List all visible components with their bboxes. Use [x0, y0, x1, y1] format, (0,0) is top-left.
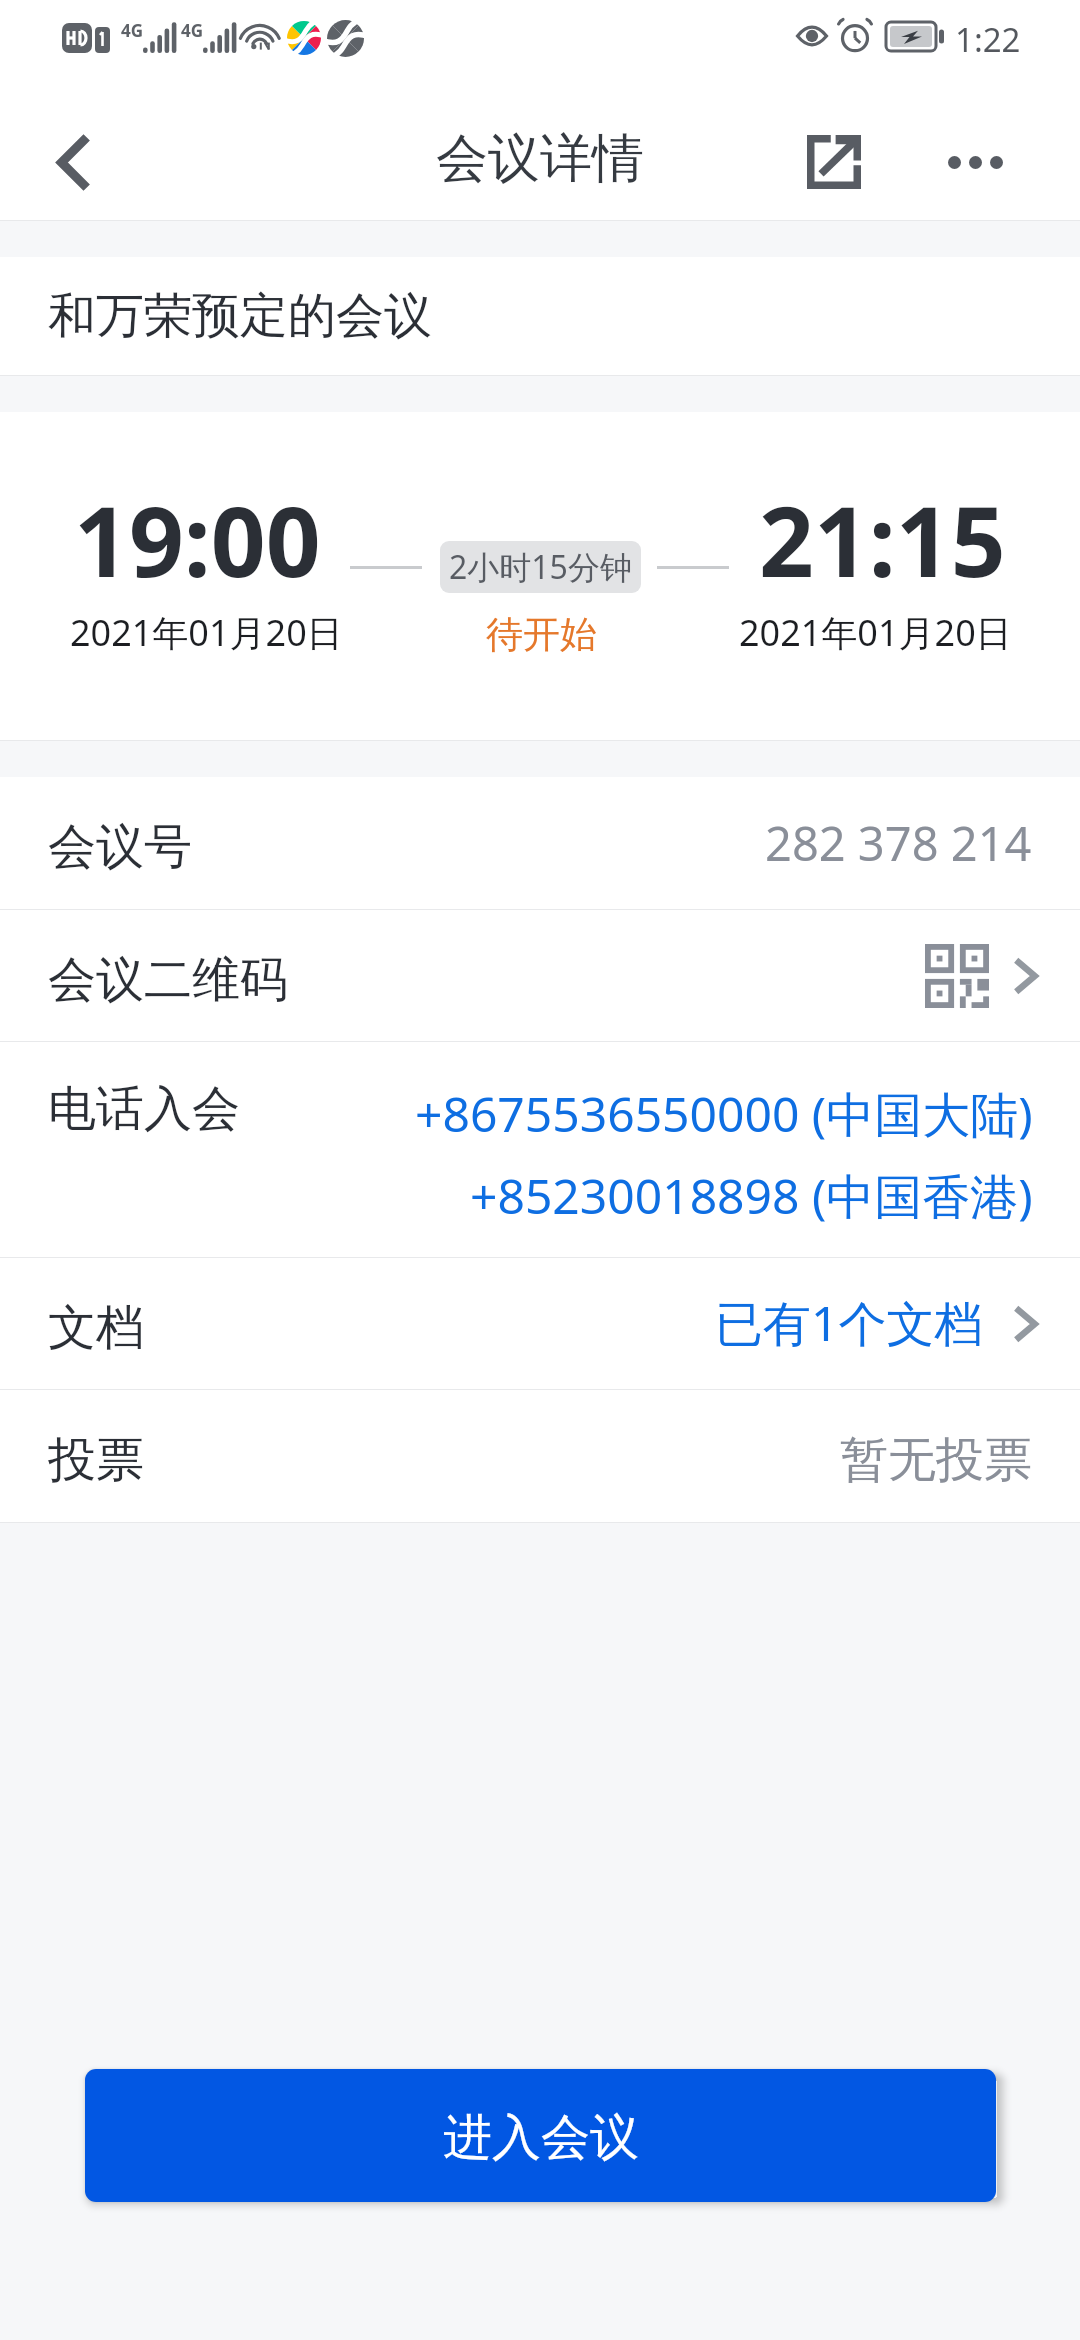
button[interactable]: 投票: [0, 1390, 1080, 1522]
staticText: 已有1个文档: [715, 1290, 983, 1356]
button[interactable]: Share: [774, 92, 894, 220]
staticText: 2小时15分钟: [449, 545, 632, 589]
staticText: 文档: [48, 1298, 144, 1358]
staticText: 282 378 214: [765, 811, 1032, 875]
button[interactable]: Back: [12, 92, 132, 220]
staticText: 19:00: [74, 474, 321, 605]
staticText: 暂无投票: [840, 1430, 1032, 1490]
button[interactable]: 文档: [0, 1258, 1080, 1389]
button[interactable]: 和万荣预定的会议: [0, 257, 1080, 375]
staticText: 21:15: [759, 474, 1006, 605]
staticText: 电话入会: [48, 1079, 240, 1139]
button[interactable]: 会议二维码: [0, 910, 1080, 1041]
staticText: 待开始: [486, 611, 597, 658]
staticText: 会议详情: [436, 126, 644, 192]
staticText: 1:22: [955, 17, 1021, 62]
button[interactable]: 电话入会: [0, 1042, 1080, 1257]
staticText: 2021年01月20日: [70, 608, 343, 657]
staticText: 会议二维码: [48, 950, 288, 1010]
button[interactable]: +85230018898 (中国香港): [470, 1163, 1033, 1229]
button[interactable]: More options: [915, 92, 1035, 220]
button[interactable]: +8675536550000 (中国大陆): [415, 1081, 1033, 1147]
staticText: 进入会议: [443, 2107, 639, 2169]
button[interactable]: 进入会议: [85, 2069, 996, 2202]
staticText: 4G: [181, 19, 204, 42]
button[interactable]: 会议号: [0, 777, 1080, 909]
staticText: 2021年01月20日: [739, 608, 1012, 657]
staticText: 4G: [121, 19, 144, 42]
staticText: 会议号: [48, 817, 192, 877]
staticText: 和万荣预定的会议: [48, 286, 432, 346]
staticText: 投票: [48, 1430, 144, 1490]
